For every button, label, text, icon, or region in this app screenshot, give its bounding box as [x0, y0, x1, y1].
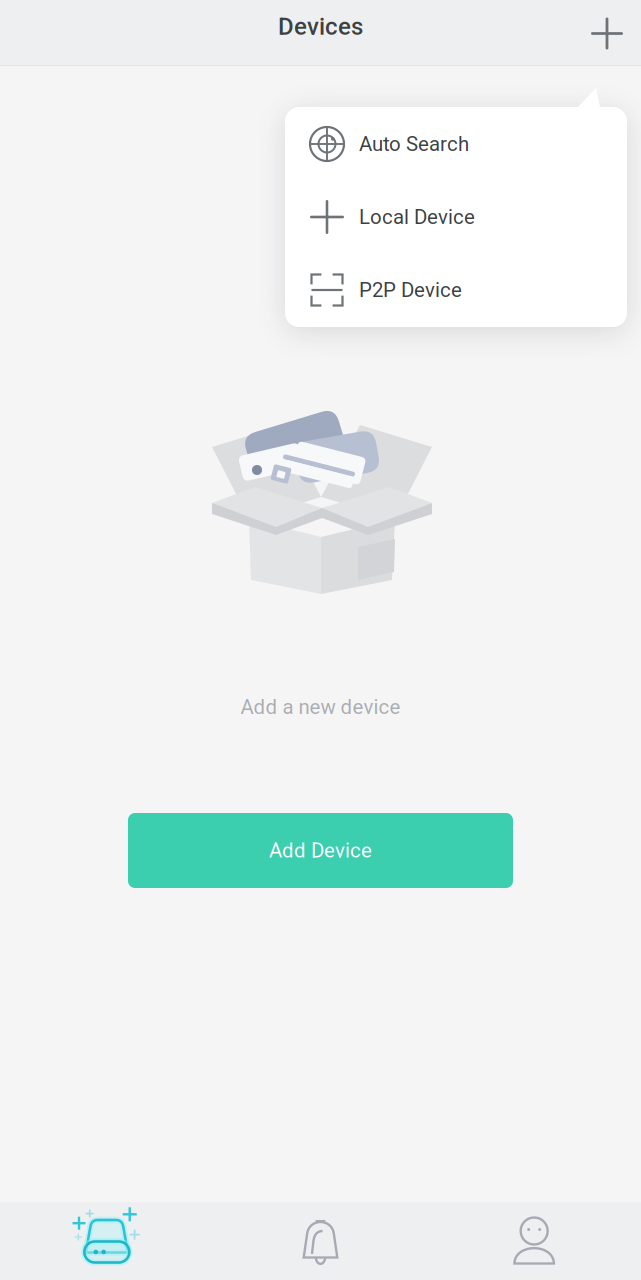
button[interactable]: Devices [0, 1202, 214, 1280]
staticText: Auto Search [359, 132, 469, 156]
staticText: Add a new device [240, 695, 400, 719]
button[interactable]: Local Device [285, 180, 627, 253]
button[interactable]: Add Device [128, 813, 513, 888]
button[interactable]: P2P Device [285, 253, 627, 326]
staticText: Devices [278, 12, 363, 40]
button[interactable]: Notifications [214, 1202, 427, 1280]
staticText: P2P Device [359, 278, 462, 302]
staticText: Add Device [269, 838, 372, 862]
button[interactable]: Auto Search [285, 107, 627, 180]
button[interactable]: Add device [571, 0, 641, 66]
staticText: Local Device [359, 205, 475, 229]
button[interactable]: Profile [427, 1202, 641, 1280]
